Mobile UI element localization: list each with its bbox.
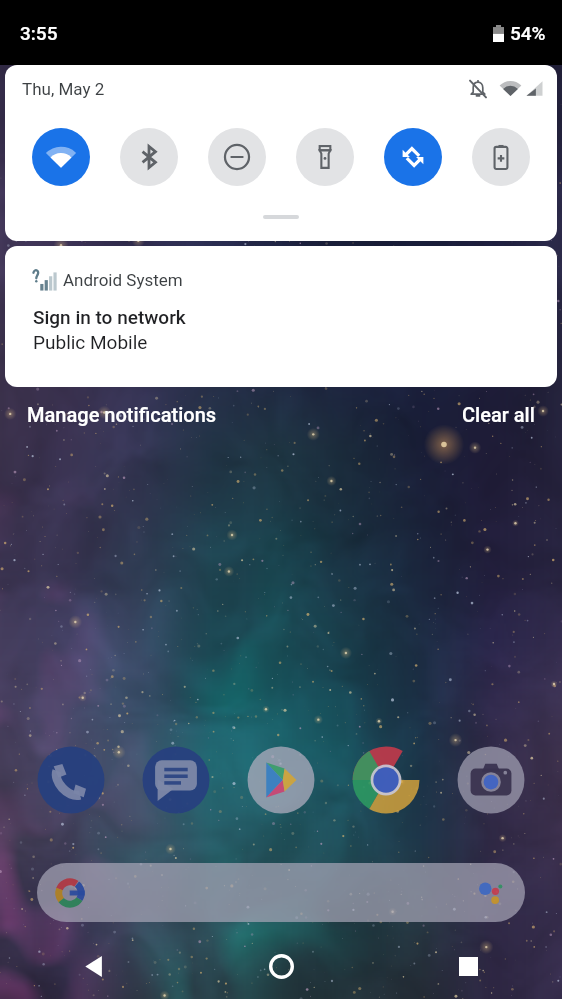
button[interactable]: Recents [435,933,501,999]
button[interactable]: Back [61,933,127,999]
button[interactable]: Auto rotate [384,128,442,186]
button[interactable]: Chrome [352,746,420,814]
staticText: Public Mobile [33,331,148,353]
button[interactable]: Android System [5,246,557,387]
staticText: Manage notifications [27,403,217,426]
staticText: Thu, May 2 [22,79,105,99]
button[interactable]: Flashlight [296,128,354,186]
button[interactable]: Wi-Fi [32,128,90,186]
button[interactable]: Messages [142,746,210,814]
button[interactable]: Phone [37,746,105,814]
button[interactable]: Clear all [462,403,535,426]
staticText: Android System [63,270,183,290]
button[interactable]: Bluetooth [120,128,178,186]
button[interactable]: Battery saver [472,128,530,186]
staticText: Clear all [462,403,535,426]
staticText: Sign in to network [33,306,186,328]
button[interactable]: Do not disturb [208,128,266,186]
staticText: 3:55 [20,22,58,44]
button[interactable]: Camera [457,746,525,814]
button[interactable] [37,863,525,922]
button[interactable]: Manage notifications [27,403,217,426]
button[interactable]: Home [248,933,314,999]
button[interactable]: Play Store [247,746,315,814]
staticText: 54% [510,22,546,44]
